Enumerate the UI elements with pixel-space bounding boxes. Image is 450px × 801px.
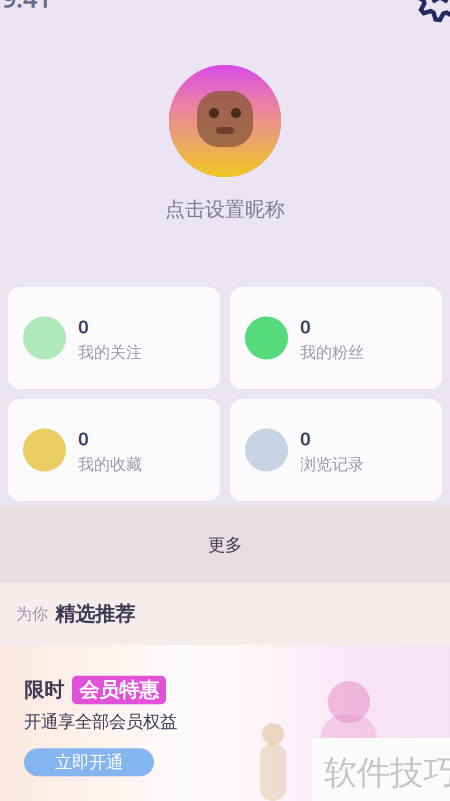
- staticText: 会员特惠: [79, 678, 159, 702]
- staticText: 0: [300, 314, 311, 339]
- button[interactable]: 0: [230, 399, 442, 501]
- button[interactable]: 0: [8, 399, 220, 501]
- staticText: 更多: [208, 534, 242, 556]
- staticText: 点击设置昵称: [165, 197, 285, 222]
- staticText: 浏览记录: [300, 455, 364, 474]
- staticText: 我的粉丝: [300, 343, 364, 362]
- staticText: 我的收藏: [78, 455, 142, 474]
- button[interactable]: Settings: [414, 0, 450, 23]
- button[interactable]: 0: [8, 287, 220, 389]
- staticText: 限时: [24, 678, 64, 702]
- staticText: 为你: [16, 604, 48, 624]
- staticText: 我的关注: [78, 343, 142, 362]
- staticText: 开通享全部会员权益: [24, 711, 177, 732]
- staticText: 0: [78, 426, 89, 451]
- staticText: 0: [78, 314, 89, 339]
- staticText: 精选推荐: [55, 602, 135, 626]
- staticText: 9:41: [2, 0, 51, 15]
- button[interactable]: 立即开通: [24, 748, 154, 776]
- staticText: 0: [300, 426, 311, 451]
- button[interactable]: 0: [230, 287, 442, 389]
- button[interactable]: 更多: [0, 507, 450, 583]
- staticText: 软件技巧: [324, 752, 450, 793]
- staticText: 立即开通: [55, 752, 123, 773]
